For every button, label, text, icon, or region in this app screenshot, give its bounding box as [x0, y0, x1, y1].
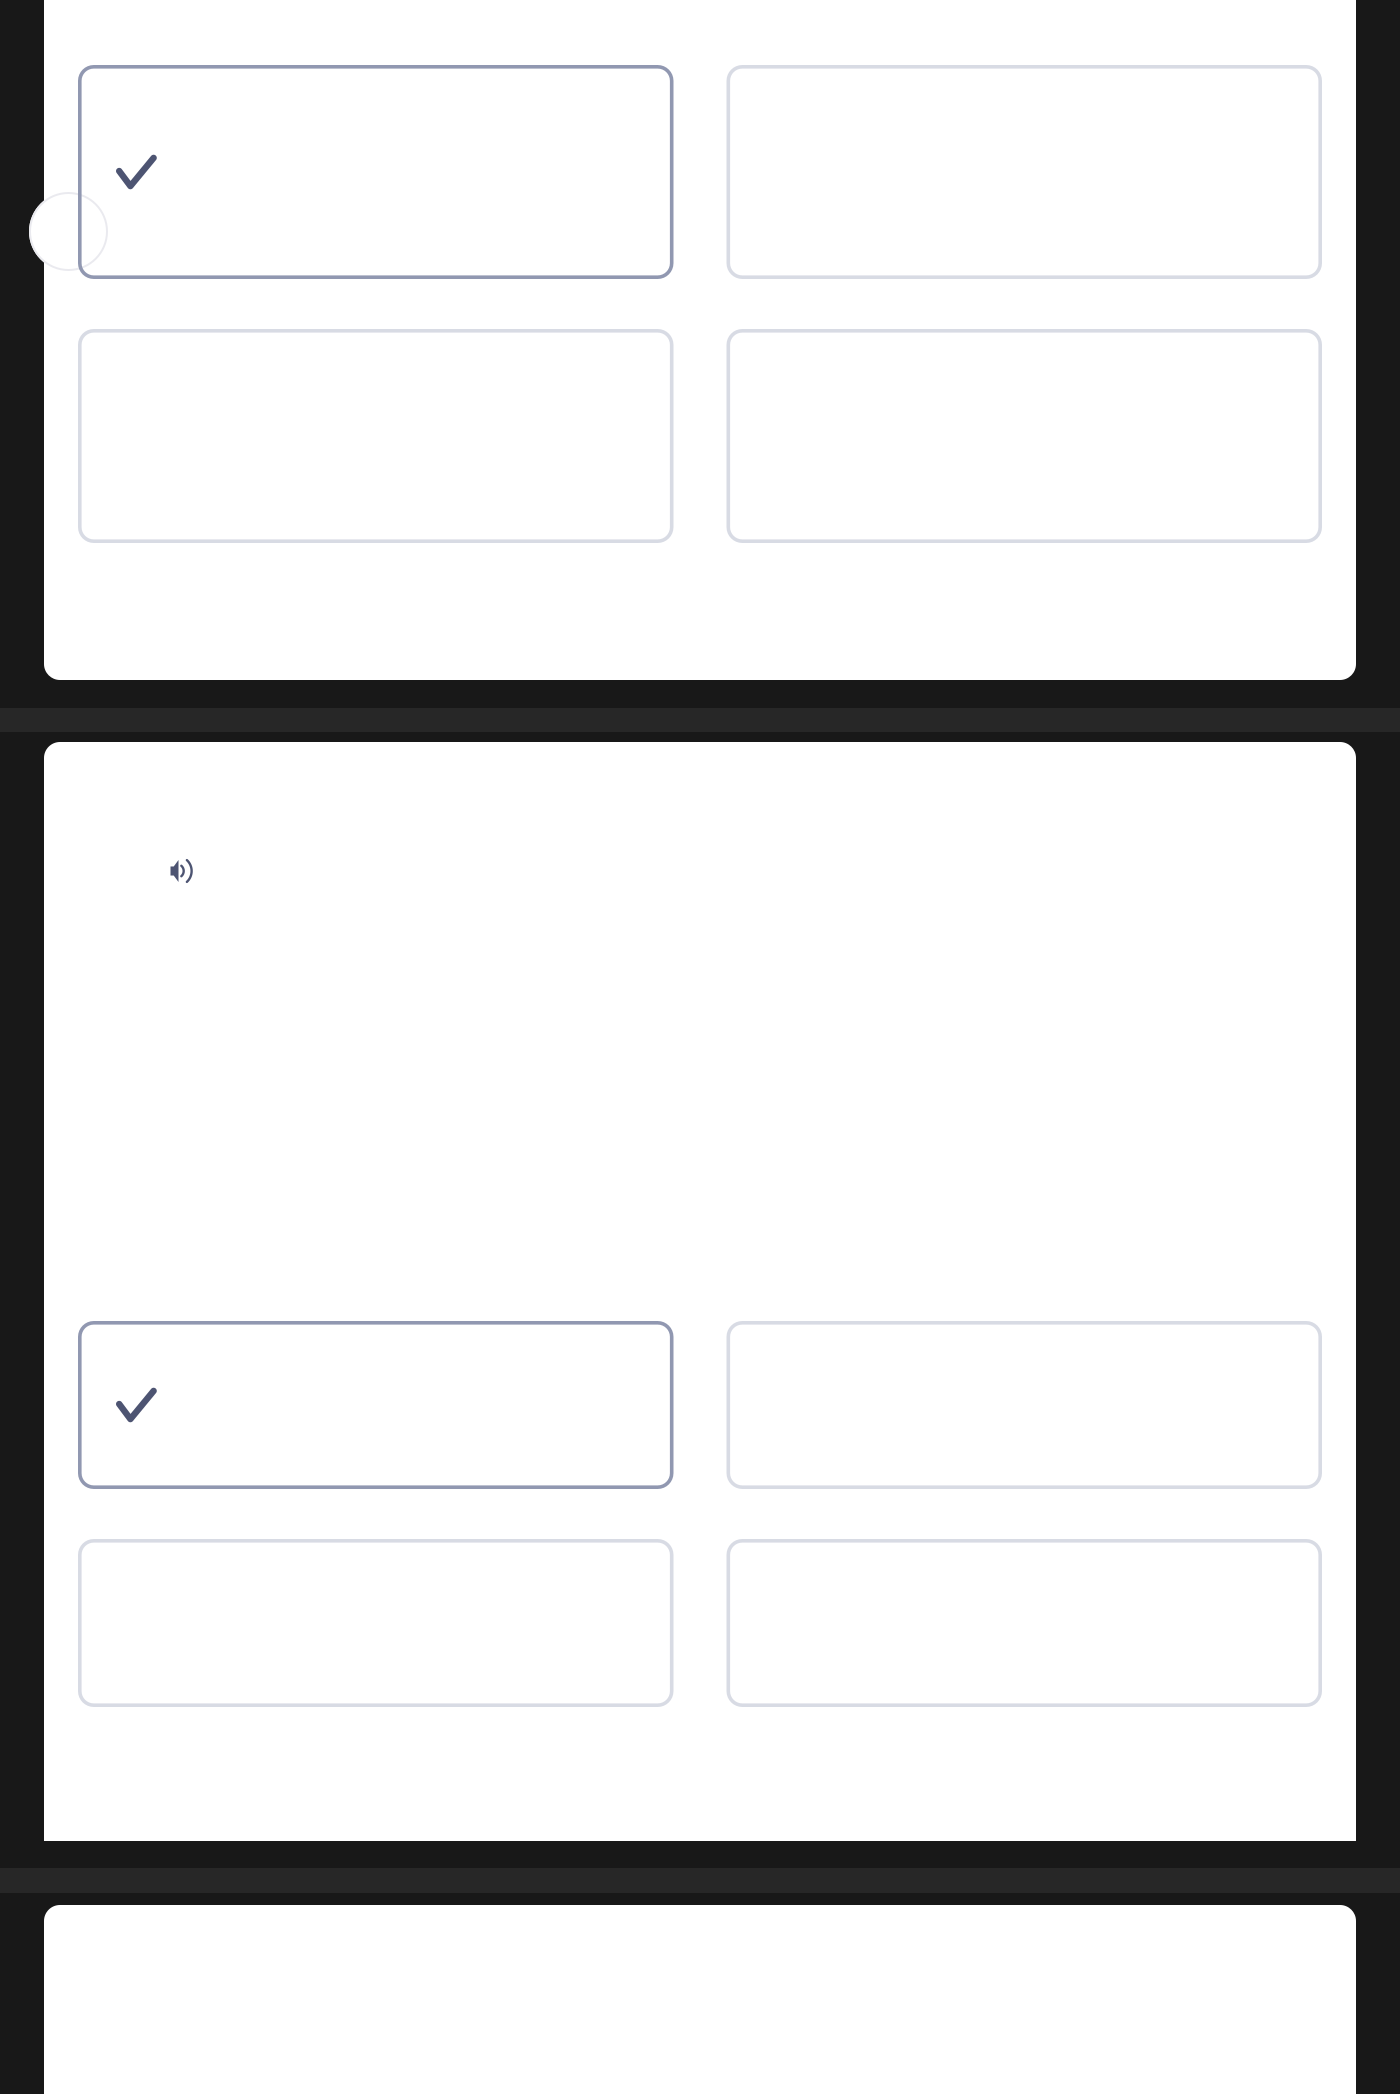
button[interactable]: Answer choice — [726, 1539, 1322, 1707]
button[interactable]: Answer choice — [726, 1321, 1322, 1489]
button[interactable]: Play audio — [44, 742, 1356, 883]
button[interactable]: Answer choice, selected — [78, 65, 673, 279]
button[interactable]: Answer choice — [726, 65, 1322, 279]
button[interactable]: Answer choice, selected — [78, 1321, 673, 1489]
button[interactable]: Answer choice — [78, 329, 673, 543]
button[interactable]: Answer choice — [78, 1539, 673, 1707]
button[interactable]: Answer choice — [726, 329, 1322, 543]
